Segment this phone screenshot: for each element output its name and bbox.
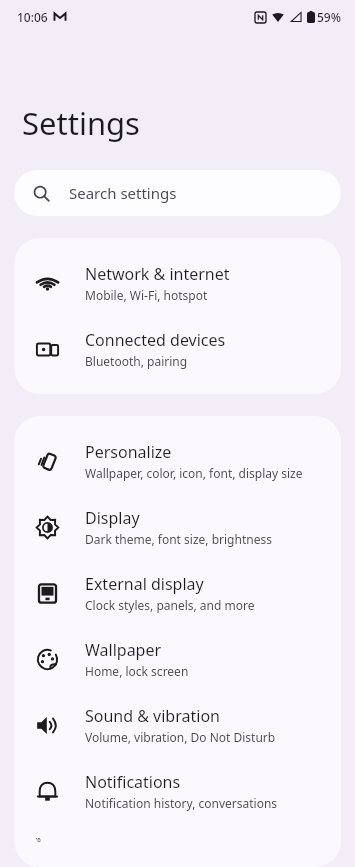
- staticText: Sound & vibration: [85, 705, 220, 727]
- staticText: Search settings: [69, 183, 177, 203]
- button[interactable]: External display: [14, 560, 341, 626]
- staticText: Home, lock screen: [85, 663, 189, 679]
- button[interactable]: Sound & vibration: [14, 692, 341, 758]
- button[interactable]: Network & internet: [14, 250, 341, 316]
- button[interactable]: Wallpaper: [14, 626, 341, 692]
- button[interactable]: Search settings: [14, 170, 341, 216]
- staticText: Settings: [22, 102, 140, 144]
- staticText: 59%: [317, 9, 341, 25]
- staticText: Connected devices: [85, 329, 226, 351]
- button[interactable]: Personalize: [14, 428, 341, 494]
- staticText: Notifications: [85, 771, 181, 793]
- staticText: 10:06: [17, 9, 48, 25]
- button[interactable]: Notifications: [14, 758, 341, 824]
- staticText: Clock styles, panels, and more: [85, 597, 255, 613]
- staticText: Bluetooth, pairing: [85, 353, 188, 369]
- staticText: Mobile, Wi-Fi, hotspot: [85, 287, 208, 303]
- staticText: Display: [85, 507, 140, 529]
- staticText: Dark theme, font size, brightness: [85, 531, 272, 547]
- button[interactable]: Display: [14, 494, 341, 560]
- button[interactable]: Gestures: [14, 824, 341, 855]
- staticText: Wallpaper, color, icon, font, display si…: [85, 465, 303, 481]
- staticText: External display: [85, 573, 204, 595]
- button[interactable]: Connected devices: [14, 316, 341, 382]
- staticText: Wallpaper: [85, 639, 162, 661]
- staticText: Notification history, conversations: [85, 795, 278, 811]
- staticText: Personalize: [85, 441, 172, 463]
- staticText: Volume, vibration, Do Not Disturb: [85, 729, 276, 745]
- staticText: Network & internet: [85, 263, 230, 285]
